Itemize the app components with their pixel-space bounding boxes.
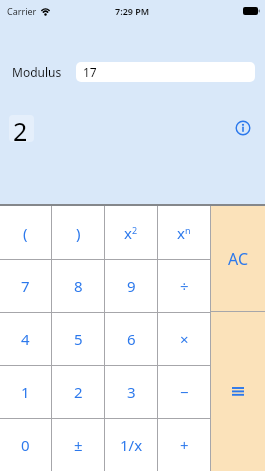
button[interactable]: (: [0, 206, 51, 259]
button[interactable]: 7: [0, 260, 51, 312]
button[interactable]: [211, 312, 265, 471]
staticText: AC: [228, 248, 249, 270]
button[interactable]: xn: [158, 206, 210, 259]
button[interactable]: 1: [0, 366, 51, 418]
staticText: 6: [127, 329, 136, 349]
button[interactable]: 9: [105, 260, 157, 312]
staticText: Modulus: [12, 64, 62, 80]
staticText: 8: [74, 276, 83, 296]
button[interactable]: 1/x: [105, 419, 157, 471]
staticText: 17: [83, 64, 97, 80]
button[interactable]: ÷: [158, 260, 210, 312]
staticText: −: [180, 382, 189, 402]
staticText: xn: [177, 223, 191, 243]
staticText: (: [23, 223, 28, 243]
button[interactable]: −: [158, 366, 210, 418]
staticText: 7:29 PM: [115, 5, 150, 17]
staticText: 7: [21, 276, 30, 296]
button[interactable]: 2: [52, 366, 104, 418]
button[interactable]: 3: [105, 366, 157, 418]
staticText: 4: [21, 329, 30, 349]
button[interactable]: x2: [105, 206, 157, 259]
staticText: 5: [74, 329, 83, 349]
staticText: 0: [21, 435, 30, 455]
staticText: Carrier: [7, 5, 37, 17]
staticText: ÷: [180, 276, 189, 296]
button[interactable]: 5: [52, 313, 104, 365]
staticText: x2: [124, 223, 138, 243]
staticText: 1: [21, 382, 30, 402]
button[interactable]: ×: [158, 313, 210, 365]
staticText: ): [76, 223, 81, 243]
staticText: 3: [127, 382, 136, 402]
button[interactable]: ): [52, 206, 104, 259]
button[interactable]: 4: [0, 313, 51, 365]
button[interactable]: 8: [52, 260, 104, 312]
button[interactable]: AC: [211, 206, 265, 311]
button[interactable]: [235, 120, 251, 136]
staticText: ±: [74, 435, 83, 455]
button[interactable]: 0: [0, 419, 51, 471]
staticText: 2: [74, 382, 83, 402]
button[interactable]: ±: [52, 419, 104, 471]
button[interactable]: 17: [76, 62, 255, 82]
button[interactable]: +: [158, 419, 210, 471]
button[interactable]: 6: [105, 313, 157, 365]
staticText: +: [180, 435, 189, 455]
staticText: 9: [127, 276, 136, 296]
staticText: 2: [13, 114, 28, 142]
staticText: ×: [180, 329, 189, 349]
staticText: 1/x: [120, 435, 143, 455]
